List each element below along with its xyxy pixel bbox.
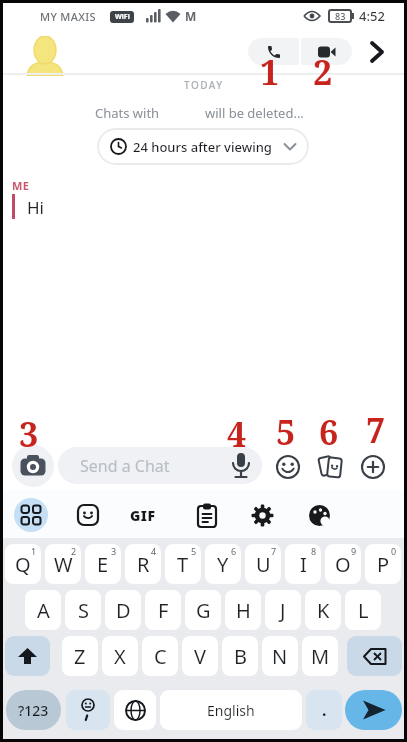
- staticText: 1: [31, 545, 37, 557]
- button[interactable]: Y: [205, 544, 241, 584]
- staticText: 5: [276, 409, 296, 455]
- staticText: G: [196, 597, 211, 624]
- button[interactable]: M: [302, 636, 338, 676]
- staticText: 3: [19, 411, 39, 457]
- button[interactable]: R: [125, 544, 161, 584]
- staticText: 4:52: [359, 7, 385, 25]
- staticText: 8: [311, 545, 317, 557]
- staticText: S: [78, 597, 89, 624]
- button[interactable]: A: [25, 590, 61, 630]
- staticText: 24 hours after viewing: [133, 138, 272, 156]
- button[interactable]: B: [222, 636, 258, 676]
- staticText: F: [158, 597, 169, 624]
- button[interactable]: [14, 498, 48, 532]
- button[interactable]: G: [185, 590, 221, 630]
- button[interactable]: .: [306, 690, 342, 730]
- staticText: Q: [15, 551, 31, 578]
- button[interactable]: ?123: [6, 690, 61, 730]
- button[interactable]: [301, 38, 352, 65]
- button[interactable]: Send a Chat: [58, 447, 262, 484]
- staticText: 0: [391, 545, 397, 557]
- button[interactable]: T: [165, 544, 201, 584]
- button[interactable]: D: [105, 590, 141, 630]
- staticText: M: [185, 8, 197, 24]
- staticText: TODAY: [184, 78, 224, 92]
- staticText: M: [311, 643, 330, 670]
- staticText: MY MAXIS: [40, 9, 96, 24]
- staticText: 2: [71, 545, 77, 557]
- staticText: will be deleted...: [205, 104, 304, 122]
- button[interactable]: [318, 454, 345, 480]
- button[interactable]: [308, 504, 333, 527]
- button[interactable]: [276, 455, 300, 479]
- staticText: 6: [231, 545, 237, 557]
- staticText: N: [272, 643, 288, 670]
- staticText: 7: [366, 407, 386, 453]
- staticText: H: [236, 597, 251, 624]
- staticText: 83: [335, 10, 346, 22]
- staticText: Z: [74, 643, 86, 670]
- staticText: A: [37, 597, 50, 624]
- button[interactable]: Q: [5, 544, 41, 584]
- button[interactable]: [196, 503, 218, 528]
- button[interactable]: [347, 636, 402, 676]
- button[interactable]: J: [265, 590, 301, 630]
- button[interactable]: [114, 690, 156, 730]
- button[interactable]: [361, 455, 385, 479]
- button[interactable]: W: [45, 544, 81, 584]
- staticText: 9: [351, 545, 357, 557]
- staticText: R: [137, 551, 150, 578]
- button[interactable]: V: [182, 636, 218, 676]
- button[interactable]: U: [245, 544, 281, 584]
- staticText: Chats with: [95, 104, 160, 122]
- staticText: J: [280, 597, 286, 624]
- button[interactable]: C: [142, 636, 178, 676]
- button[interactable]: 24 hours after viewing: [97, 128, 309, 165]
- button[interactable]: K: [305, 590, 341, 630]
- staticText: ?123: [18, 701, 49, 720]
- button[interactable]: [248, 38, 299, 65]
- button[interactable]: [251, 504, 274, 527]
- staticText: X: [114, 643, 126, 670]
- staticText: GIF: [130, 506, 156, 525]
- button[interactable]: X: [102, 636, 138, 676]
- staticText: D: [116, 597, 131, 624]
- button[interactable]: N: [262, 636, 298, 676]
- staticText: K: [317, 597, 330, 624]
- button[interactable]: H: [225, 590, 261, 630]
- staticText: English: [207, 701, 255, 720]
- staticText: P: [377, 551, 390, 578]
- staticText: B: [234, 643, 247, 670]
- button[interactable]: English: [160, 690, 302, 730]
- button[interactable]: [5, 636, 50, 676]
- staticText: 5: [191, 545, 197, 557]
- button[interactable]: [368, 41, 388, 63]
- button[interactable]: [12, 445, 54, 487]
- staticText: 2: [313, 49, 333, 95]
- staticText: O: [335, 551, 351, 578]
- button[interactable]: L: [345, 590, 381, 630]
- staticText: V: [194, 643, 206, 670]
- button[interactable]: Z: [62, 636, 98, 676]
- button[interactable]: O: [325, 544, 361, 584]
- staticText: Y: [217, 551, 229, 578]
- button[interactable]: F: [145, 590, 181, 630]
- button[interactable]: P: [365, 544, 401, 584]
- staticText: T: [177, 551, 189, 578]
- staticText: E: [97, 551, 109, 578]
- button[interactable]: I: [285, 544, 321, 584]
- staticText: 4: [151, 545, 157, 557]
- button[interactable]: S: [65, 590, 101, 630]
- staticText: 3: [111, 545, 117, 557]
- staticText: 6: [319, 409, 339, 455]
- button[interactable]: [345, 690, 402, 730]
- staticText: .: [322, 699, 327, 721]
- button[interactable]: E: [85, 544, 121, 584]
- staticText: ME: [12, 178, 30, 193]
- staticText: 1: [260, 49, 280, 95]
- button[interactable]: [66, 690, 110, 730]
- button[interactable]: [77, 504, 100, 527]
- staticText: 7: [271, 545, 277, 557]
- staticText: Send a Chat: [80, 455, 170, 477]
- staticText: C: [154, 643, 167, 670]
